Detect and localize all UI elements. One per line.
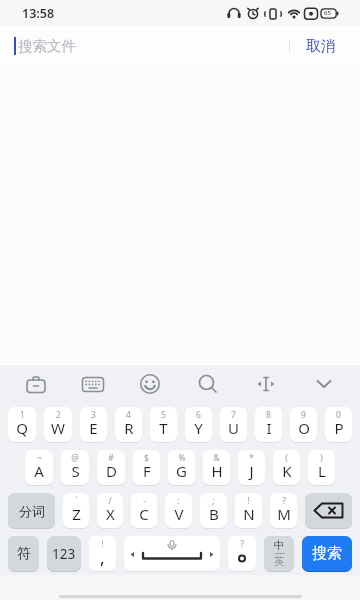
button[interactable]: 取消 xyxy=(290,26,360,66)
staticText: 7 xyxy=(231,409,236,421)
staticText: / xyxy=(108,495,112,507)
button[interactable] xyxy=(121,365,179,403)
staticText: J xyxy=(249,461,254,481)
staticText: 6 xyxy=(196,409,201,421)
button[interactable] xyxy=(237,365,295,403)
button[interactable]: 0 xyxy=(325,407,352,442)
button[interactable]: & xyxy=(203,450,230,485)
staticText: H xyxy=(211,461,223,481)
staticText: ; xyxy=(212,495,215,507)
staticText: Z xyxy=(72,504,81,524)
staticText: % xyxy=(178,452,186,464)
staticText: Q xyxy=(16,418,28,438)
staticText: O xyxy=(298,418,310,438)
staticText: V xyxy=(174,504,184,524)
staticText: P xyxy=(334,418,344,438)
button[interactable] xyxy=(7,365,64,403)
staticText: $ xyxy=(144,452,149,464)
button[interactable]: ? xyxy=(228,536,256,571)
staticText: ` xyxy=(75,495,78,507)
staticText: 65 xyxy=(324,9,331,17)
staticText: ? xyxy=(240,538,244,550)
button[interactable]: ` xyxy=(63,493,89,528)
staticText: 2 xyxy=(56,409,61,421)
staticText: B xyxy=(209,504,219,524)
button[interactable]: 4 xyxy=(115,407,142,442)
staticText: 中 xyxy=(274,539,285,552)
staticText: S xyxy=(71,461,80,481)
staticText: K xyxy=(282,461,292,481)
button[interactable]: ~ xyxy=(25,450,53,485)
staticText: T xyxy=(159,418,168,438)
staticText: U xyxy=(228,418,239,438)
button[interactable]: 7 xyxy=(220,407,247,442)
staticText: G xyxy=(176,461,187,481)
staticText: ! xyxy=(101,538,104,550)
button[interactable]: 3 xyxy=(80,407,107,442)
button[interactable]: ? xyxy=(270,493,297,528)
button[interactable]: 符 xyxy=(8,536,39,571)
button[interactable]: 6 xyxy=(185,407,212,442)
button[interactable]: # xyxy=(97,450,125,485)
staticText: D xyxy=(106,461,117,481)
staticText: 123 xyxy=(52,545,76,563)
button[interactable]: 5 xyxy=(150,407,177,442)
button[interactable]: : xyxy=(165,493,192,528)
button[interactable]: / xyxy=(97,493,123,528)
button[interactable]: 中 xyxy=(264,536,294,571)
button[interactable] xyxy=(179,365,237,403)
staticText: 搜索文件 xyxy=(18,37,76,55)
staticText: 分词 xyxy=(19,503,45,519)
staticText: X xyxy=(106,504,115,524)
staticText: ~ xyxy=(37,452,42,464)
staticText: E xyxy=(89,418,98,438)
staticText: 8 xyxy=(266,409,271,421)
button[interactable]: 搜索 xyxy=(302,536,352,571)
staticText: , xyxy=(100,546,105,569)
staticText: ) xyxy=(320,452,323,464)
staticText: N xyxy=(243,504,255,524)
staticText: @ xyxy=(71,452,79,464)
button[interactable] xyxy=(305,493,352,528)
staticText: 英 xyxy=(274,555,285,568)
button[interactable]: - xyxy=(131,493,157,528)
button[interactable]: % xyxy=(168,450,195,485)
staticText: A xyxy=(34,461,44,481)
staticText: ! xyxy=(247,495,250,507)
button[interactable]: $ xyxy=(133,450,160,485)
button[interactable] xyxy=(295,365,353,403)
staticText: # xyxy=(108,452,114,464)
staticText: & xyxy=(213,452,220,464)
staticText: 0 xyxy=(336,409,341,421)
button[interactable]: ) xyxy=(308,450,335,485)
button[interactable]: 8 xyxy=(255,407,282,442)
button[interactable] xyxy=(64,365,121,403)
staticText: ? xyxy=(282,495,286,507)
button[interactable]: @ xyxy=(61,450,89,485)
staticText: Y xyxy=(194,418,203,438)
button[interactable]: ! xyxy=(89,536,116,571)
staticText: * xyxy=(249,452,254,464)
staticText: F xyxy=(143,461,151,481)
staticText: : xyxy=(177,495,180,507)
button[interactable]: ! xyxy=(235,493,262,528)
staticText: 取消 xyxy=(306,37,336,56)
staticText: 5 xyxy=(161,409,166,421)
staticText: 搜索 xyxy=(312,544,342,563)
staticText: I xyxy=(266,418,272,438)
button[interactable]: ( xyxy=(273,450,300,485)
staticText: C xyxy=(139,504,149,524)
staticText: - xyxy=(143,495,146,507)
button[interactable]: 123 xyxy=(47,536,81,571)
button[interactable]: 2 xyxy=(44,407,72,442)
staticText: 13:58 xyxy=(22,5,55,22)
button[interactable]: 分词 xyxy=(8,493,55,528)
staticText: W xyxy=(51,418,65,438)
button[interactable]: 1 xyxy=(8,407,36,442)
button[interactable]: * xyxy=(238,450,265,485)
staticText: M xyxy=(277,504,291,524)
button[interactable] xyxy=(124,536,220,571)
button[interactable]: 9 xyxy=(290,407,317,442)
staticText: 3 xyxy=(91,409,96,421)
button[interactable]: ; xyxy=(200,493,227,528)
